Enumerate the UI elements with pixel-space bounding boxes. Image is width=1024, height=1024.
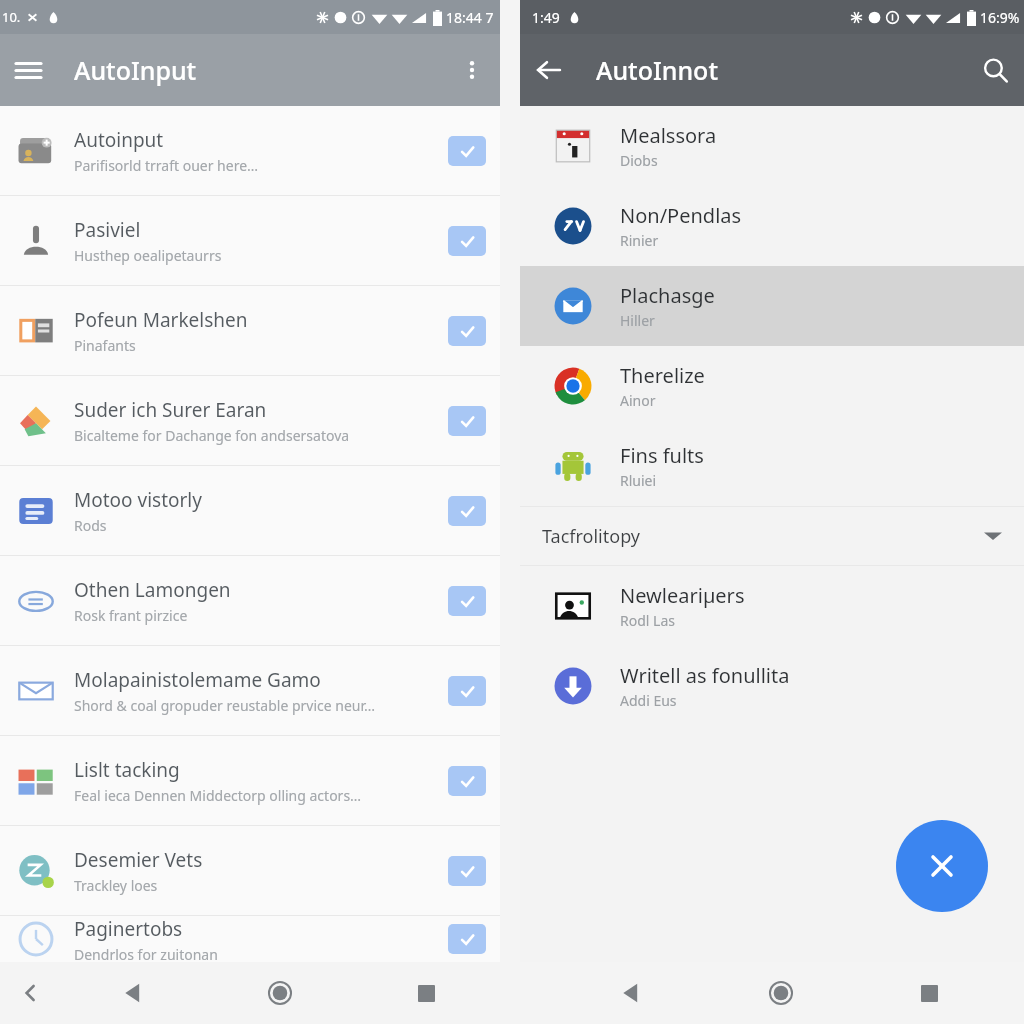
staticText: 1:49 xyxy=(532,8,560,27)
staticText: Non/Pendlas xyxy=(620,202,742,229)
staticText: Diobs xyxy=(620,151,658,170)
button[interactable]: Home xyxy=(206,962,353,1024)
button[interactable]: Back xyxy=(60,962,206,1024)
staticText: Newleariµers xyxy=(620,582,745,609)
staticText: Lislt tacking xyxy=(74,757,180,783)
staticText: Mealssora xyxy=(620,122,717,149)
button[interactable]: Mealssora xyxy=(520,106,1024,186)
staticText: Ainor xyxy=(620,391,656,410)
staticText: Writell as fonullita xyxy=(620,662,790,689)
staticText: Rods xyxy=(74,516,107,535)
button[interactable]: Newleariµers xyxy=(520,566,1024,646)
button[interactable] xyxy=(448,586,486,616)
button[interactable]: Molapainistolemame Gamo xyxy=(0,646,500,735)
staticText: Fins fults xyxy=(620,442,704,469)
staticText: Addi Eus xyxy=(620,691,677,710)
button[interactable]: Non/Pendlas xyxy=(520,186,1024,266)
staticText: Pasiviel xyxy=(74,217,141,243)
staticText: Desemier Vets xyxy=(74,847,203,873)
button[interactable]: Othen Lamongen xyxy=(0,556,500,645)
staticText: Feal ieca Dennen Middectorp olling actor… xyxy=(74,786,362,805)
button[interactable]: Tacfrolitopy xyxy=(520,507,1024,565)
staticText: 16:9% xyxy=(980,8,1020,27)
staticText: Tacfrolitopy xyxy=(542,524,641,549)
staticText: 18:44 7 xyxy=(446,8,494,27)
staticText: Motoo vistorly xyxy=(74,487,202,513)
staticText: Bicalteme for Dachange fon andsersatova xyxy=(74,426,350,445)
button[interactable]: Suder ich Surer Earan xyxy=(0,376,500,465)
button[interactable]: Navigate up xyxy=(520,41,578,99)
button[interactable]: Fins fults xyxy=(520,426,1024,506)
button[interactable]: Back xyxy=(556,962,706,1024)
staticText: Husthep oealipetaurrs xyxy=(74,246,222,265)
button[interactable] xyxy=(448,856,486,886)
staticText: Pinafants xyxy=(74,336,136,355)
staticText: Rosk frant pirzice xyxy=(74,606,188,625)
button[interactable]: Motoo vistorly xyxy=(0,466,500,555)
staticText: Suder ich Surer Earan xyxy=(74,397,267,423)
button[interactable]: Home xyxy=(706,962,855,1024)
staticText: Rluiei xyxy=(620,471,657,490)
button[interactable]: Close xyxy=(896,820,988,912)
staticText: Dendrlos for zuitonan xyxy=(74,945,218,962)
button[interactable]: Paginertobs xyxy=(0,916,500,962)
button[interactable]: Recent apps xyxy=(353,962,500,1024)
button[interactable]: Search xyxy=(966,41,1024,99)
button[interactable]: Writell as fonullita xyxy=(520,646,1024,726)
staticText: Parifisorld trraft ouer here… xyxy=(74,156,259,175)
button[interactable] xyxy=(448,316,486,346)
button[interactable]: Lislt tacking xyxy=(0,736,500,825)
staticText: Paginertobs xyxy=(74,916,183,942)
staticText: 10. xyxy=(2,8,21,26)
staticText: Trackley loes xyxy=(74,876,158,895)
staticText: Molapainistolemame Gamo xyxy=(74,667,321,693)
button[interactable]: Open navigation menu xyxy=(0,42,56,98)
staticText: AutoInnot xyxy=(596,53,718,87)
staticText: Rinier xyxy=(620,231,659,250)
staticText: Pofeun Markelshen xyxy=(74,307,248,333)
button[interactable]: More options xyxy=(444,42,500,98)
button[interactable] xyxy=(448,766,486,796)
button[interactable] xyxy=(448,136,486,166)
button[interactable] xyxy=(448,676,486,706)
button[interactable]: Autoinput xyxy=(0,106,500,195)
button[interactable]: Hide keyboard xyxy=(0,962,60,1024)
button[interactable] xyxy=(448,496,486,526)
button[interactable]: Desemier Vets xyxy=(0,826,500,915)
button[interactable]: Pasiviel xyxy=(0,196,500,285)
button[interactable]: Therelize xyxy=(520,346,1024,426)
staticText: Othen Lamongen xyxy=(74,577,231,603)
staticText: AutoInput xyxy=(74,53,197,87)
staticText: Shord & coal gropuder reustable prvice n… xyxy=(74,696,376,715)
button[interactable]: Plachasge xyxy=(520,266,1024,346)
staticText: Autoinput xyxy=(74,127,164,153)
button[interactable] xyxy=(448,924,486,954)
staticText: Plachasge xyxy=(620,282,715,309)
staticText: Rodl Las xyxy=(620,611,675,630)
button[interactable] xyxy=(448,406,486,436)
button[interactable] xyxy=(448,226,486,256)
button[interactable]: Pofeun Markelshen xyxy=(0,286,500,375)
staticText: Therelize xyxy=(620,362,705,389)
staticText: Hiller xyxy=(620,311,655,330)
button[interactable]: Recent apps xyxy=(855,962,1004,1024)
